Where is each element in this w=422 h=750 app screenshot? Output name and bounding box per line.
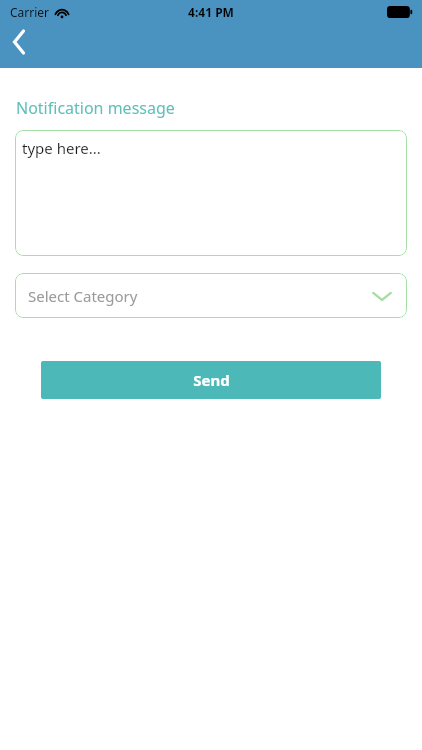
button[interactable]: Back [2,22,42,62]
staticText: type here... [22,138,101,158]
staticText: Notification message [16,97,175,119]
button[interactable]: type here... [15,130,407,256]
staticText: Send [193,370,230,390]
staticText: Carrier [10,4,50,20]
staticText: 4:41 PM [188,4,234,20]
button[interactable]: Send [41,361,381,399]
staticText: Select Category [28,286,138,306]
button[interactable]: Select Category [15,273,407,318]
